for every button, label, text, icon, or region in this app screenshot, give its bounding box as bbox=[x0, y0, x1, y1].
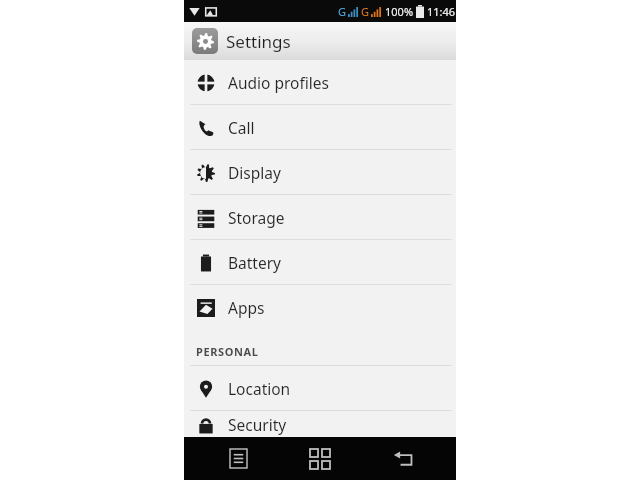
button[interactable]: Security bbox=[184, 411, 456, 437]
staticText: 11:46 bbox=[427, 4, 456, 19]
button[interactable]: Battery bbox=[184, 240, 456, 284]
staticText: G bbox=[361, 4, 370, 19]
button[interactable]: Display bbox=[184, 150, 456, 194]
button[interactable]: Recent apps bbox=[291, 437, 349, 480]
button[interactable]: Settings bbox=[184, 22, 456, 60]
staticText: Security bbox=[228, 414, 287, 435]
staticText: G bbox=[338, 4, 347, 19]
staticText: Battery bbox=[228, 252, 282, 273]
button[interactable]: Storage bbox=[184, 195, 456, 239]
staticText: Location bbox=[228, 378, 291, 399]
button[interactable]: Location bbox=[184, 366, 456, 410]
staticText: Storage bbox=[228, 207, 285, 228]
button[interactable]: Menu bbox=[209, 437, 267, 480]
staticText: Apps bbox=[228, 297, 265, 318]
staticText: Display bbox=[228, 162, 281, 183]
button[interactable]: Back bbox=[374, 437, 432, 480]
staticText: Settings bbox=[226, 30, 291, 53]
button[interactable]: Call bbox=[184, 105, 456, 149]
button[interactable]: Apps bbox=[184, 285, 456, 329]
staticText: Audio profiles bbox=[228, 72, 329, 93]
staticText: Call bbox=[228, 117, 255, 138]
staticText: PERSONAL bbox=[196, 344, 259, 359]
staticText: 100% bbox=[385, 4, 414, 19]
button[interactable]: Audio profiles bbox=[184, 60, 456, 104]
